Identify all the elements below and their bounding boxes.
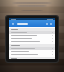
button[interactable] xyxy=(9,50,55,53)
button[interactable] xyxy=(9,34,55,37)
button[interactable]: Action xyxy=(49,22,52,25)
button[interactable] xyxy=(9,47,55,50)
button[interactable]: Navigation menu xyxy=(11,22,15,26)
button[interactable] xyxy=(9,31,55,34)
button[interactable]: Action xyxy=(45,22,48,25)
button[interactable] xyxy=(9,40,55,43)
button[interactable] xyxy=(9,37,55,40)
button[interactable] xyxy=(9,53,55,56)
